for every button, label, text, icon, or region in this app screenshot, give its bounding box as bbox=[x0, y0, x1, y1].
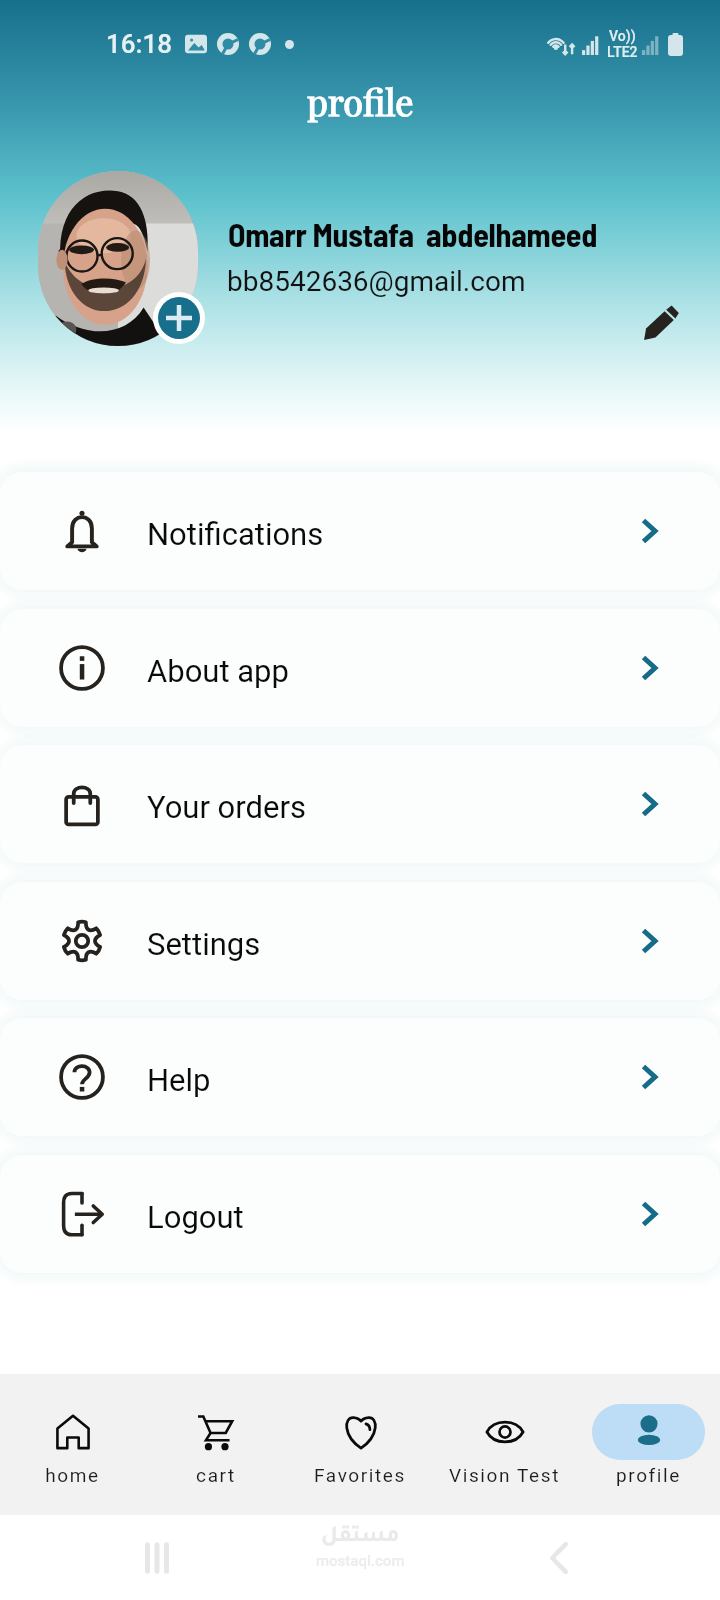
button[interactable]: About app bbox=[0, 609, 720, 727]
staticText: profile bbox=[307, 77, 414, 125]
staticText: Favorites bbox=[314, 1464, 406, 1486]
button[interactable]: Your orders bbox=[0, 745, 720, 863]
other: Recent apps bbox=[140, 1541, 174, 1575]
button[interactable]: Add photo bbox=[158, 297, 200, 339]
staticText: home bbox=[45, 1464, 100, 1486]
button[interactable]: cart bbox=[144, 1374, 288, 1515]
staticText: About app bbox=[147, 653, 289, 689]
staticText: bb8542636@gmail.com bbox=[227, 265, 526, 298]
staticText: مستقل bbox=[321, 1526, 400, 1549]
button[interactable]: Help bbox=[0, 1018, 720, 1136]
staticText: Vo)) bbox=[609, 28, 636, 44]
button[interactable]: Edit profile bbox=[637, 299, 685, 347]
staticText: Notifications bbox=[147, 516, 324, 552]
staticText: Help bbox=[147, 1062, 211, 1098]
button[interactable]: Settings bbox=[0, 882, 720, 1000]
staticText: 16:18 bbox=[106, 29, 173, 59]
staticText: mostaql.com bbox=[316, 1552, 405, 1570]
button[interactable]: Logout bbox=[0, 1155, 720, 1273]
button[interactable]: Notifications bbox=[0, 472, 720, 590]
staticText: LTE2 bbox=[607, 44, 638, 60]
button[interactable]: Profile picture bbox=[38, 171, 198, 346]
staticText: cart bbox=[196, 1464, 236, 1486]
staticText: Omarr Mustafa abdelhameed bbox=[228, 215, 598, 253]
button[interactable]: home bbox=[0, 1374, 144, 1515]
staticText: Logout bbox=[147, 1199, 244, 1235]
staticText: Settings bbox=[147, 926, 261, 962]
staticText: Vision Test bbox=[449, 1464, 560, 1486]
button[interactable]: Vision Test bbox=[432, 1374, 576, 1515]
staticText: Your orders bbox=[147, 789, 306, 825]
other: Back bbox=[542, 1541, 576, 1575]
button[interactable]: Favorites bbox=[288, 1374, 432, 1515]
staticText: profile bbox=[616, 1464, 681, 1486]
button[interactable]: profile bbox=[576, 1374, 720, 1515]
